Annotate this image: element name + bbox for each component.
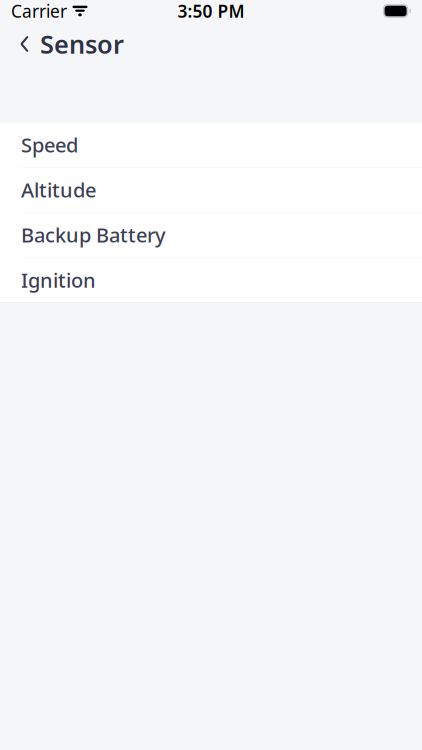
staticText: Sensor — [40, 27, 124, 61]
button[interactable]: Backup Battery — [0, 212, 422, 257]
staticText: 3:50 PM — [177, 0, 244, 22]
staticText: Backup Battery — [21, 221, 166, 248]
staticText: Carrier — [11, 0, 67, 22]
button[interactable]: Altitude — [0, 167, 422, 212]
button[interactable]: Speed — [0, 122, 422, 167]
button[interactable]: Back to Sensor — [0, 19, 134, 69]
button[interactable]: Ignition — [0, 257, 422, 302]
staticText: Altitude — [21, 176, 96, 203]
staticText: Ignition — [21, 267, 96, 293]
staticText: Speed — [21, 131, 78, 158]
